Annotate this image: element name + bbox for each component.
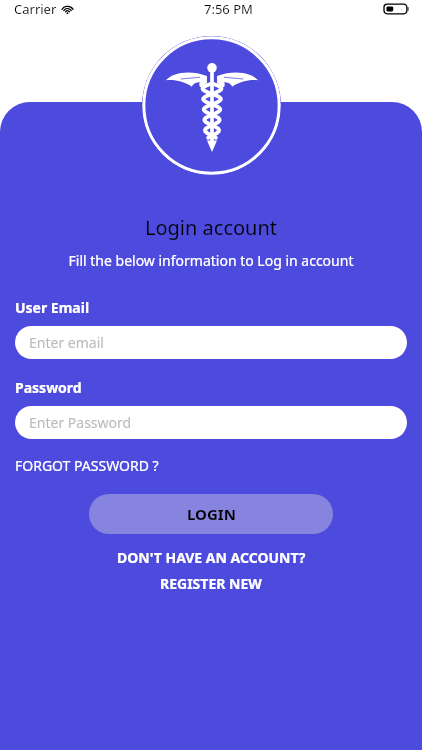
staticText: Carrier [14, 0, 57, 18]
staticText: DON'T HAVE AN ACCOUNT? [117, 548, 306, 567]
button[interactable]: Enter email [15, 326, 407, 359]
staticText: User Email [15, 298, 90, 317]
staticText: LOGIN [187, 504, 236, 524]
button[interactable]: Enter Password [15, 406, 407, 439]
staticText: Password [15, 378, 82, 397]
staticText: FORGOT PASSWORD ? [15, 456, 159, 475]
staticText: Login account [0, 214, 422, 241]
other: App logo [142, 36, 281, 175]
staticText: REGISTER NEW [160, 574, 262, 593]
button[interactable]: FORGOT PASSWORD ? [15, 456, 159, 475]
staticText: Fill the below information to Log in acc… [0, 251, 422, 270]
button[interactable]: DON'T HAVE AN ACCOUNT? [0, 548, 422, 593]
button[interactable]: LOGIN [89, 494, 333, 534]
staticText: Enter email [29, 333, 104, 352]
staticText: 7:56 PM [204, 0, 253, 18]
staticText: Enter Password [29, 413, 132, 432]
